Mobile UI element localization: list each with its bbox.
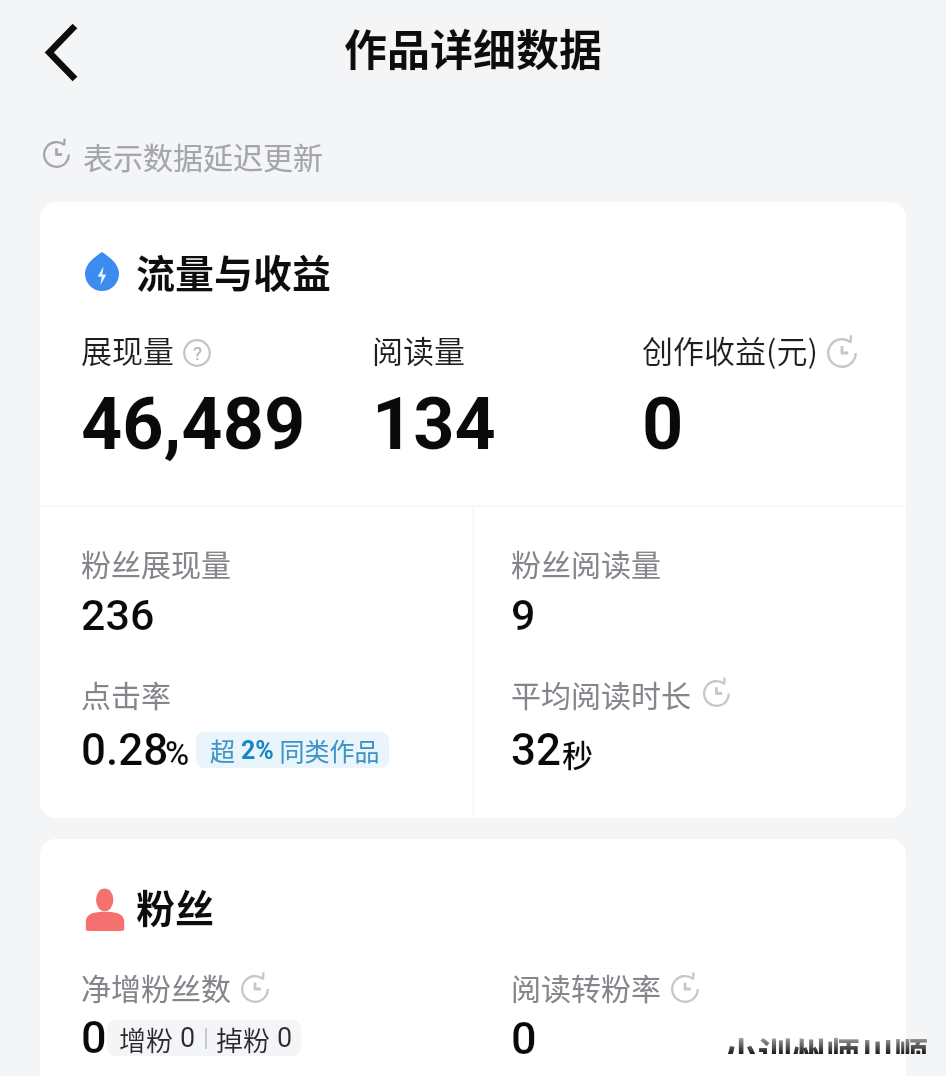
staticText: 平均阅读时长 bbox=[511, 672, 691, 715]
staticText: 阅读量 bbox=[372, 327, 465, 372]
staticText: 点击率 bbox=[81, 672, 171, 715]
staticText: 作品详细数据 bbox=[344, 16, 602, 78]
staticText: 32 bbox=[511, 724, 562, 776]
staticText: 阅读转粉率 bbox=[511, 965, 661, 1008]
staticText: 0.28 bbox=[81, 724, 169, 776]
staticText: 134 bbox=[372, 382, 496, 466]
staticText: 同类作品 bbox=[274, 732, 380, 768]
staticText: 展现量 bbox=[81, 327, 174, 372]
staticText: 秒 bbox=[562, 731, 593, 776]
staticText: 粉丝阅读量 bbox=[511, 541, 661, 584]
staticText: 46,489 bbox=[81, 382, 306, 466]
staticText: 0 bbox=[180, 1022, 196, 1054]
staticText: 2% bbox=[241, 736, 274, 765]
staticText: % bbox=[165, 734, 190, 773]
staticText: ? bbox=[193, 342, 202, 364]
staticText: 粉丝展现量 bbox=[81, 541, 231, 584]
button[interactable]: Back bbox=[21, 12, 101, 92]
staticText: 236 bbox=[81, 590, 155, 640]
staticText: 0 bbox=[81, 1011, 107, 1064]
staticText: 流量与收益 bbox=[136, 243, 332, 299]
staticText: 增粉 bbox=[119, 1020, 180, 1056]
staticText: 小训州师川顺帅 bbox=[724, 1029, 946, 1054]
staticText: 净增粉丝数 bbox=[81, 965, 231, 1008]
staticText: 创作收益(元) bbox=[642, 327, 818, 372]
staticText: 0 bbox=[277, 1022, 293, 1054]
staticText: 超 bbox=[210, 732, 241, 768]
staticText: 9 bbox=[511, 590, 536, 640]
staticText: 0 bbox=[642, 382, 684, 466]
staticText: 表示数据延迟更新 bbox=[83, 134, 323, 177]
staticText: 0 bbox=[511, 1012, 537, 1065]
staticText: 粉丝 bbox=[136, 878, 215, 934]
staticText: 掉粉 bbox=[216, 1020, 277, 1056]
